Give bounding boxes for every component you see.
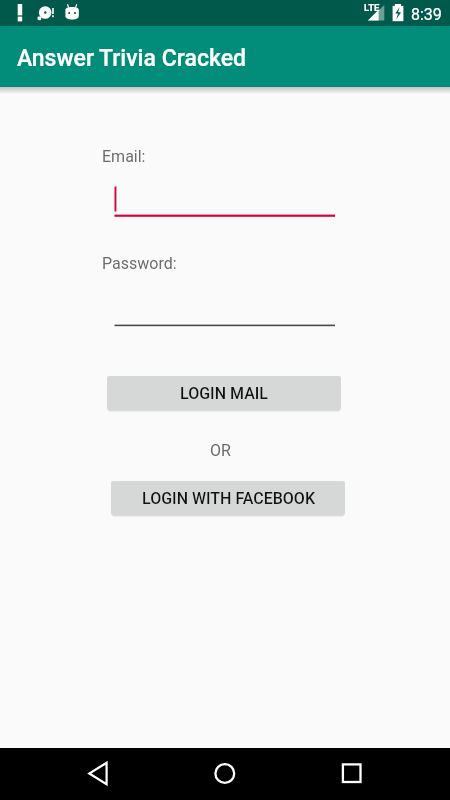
staticText: Password: — [102, 254, 177, 273]
button[interactable]: LOGIN WITH FACEBOOK — [111, 481, 345, 515]
button[interactable]: LOGIN MAIL — [107, 376, 341, 410]
staticText: Email: — [102, 147, 146, 166]
staticText: OR — [210, 441, 231, 460]
button[interactable]: Recent apps — [328, 748, 376, 800]
button[interactable]: Password input — [114, 291, 335, 327]
staticText: LOGIN MAIL — [180, 384, 268, 403]
button[interactable]: Home — [201, 748, 249, 800]
staticText: LOGIN WITH FACEBOOK — [142, 489, 315, 508]
staticText: 8:39 — [411, 5, 442, 24]
button[interactable]: Back — [74, 748, 122, 800]
staticText: LTE — [364, 2, 380, 13]
button[interactable]: Email input — [114, 181, 335, 217]
staticText: Answer Trivia Cracked — [17, 45, 247, 72]
